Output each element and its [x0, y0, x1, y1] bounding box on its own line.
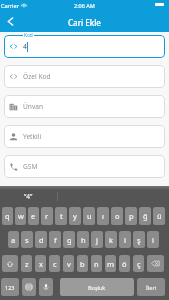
- staticText: l: [124, 235, 126, 245]
- staticText: p: [129, 211, 134, 221]
- button[interactable]: b: [77, 255, 88, 272]
- button[interactable]: j: [91, 231, 103, 248]
- staticText: Kod: [24, 32, 33, 39]
- staticText: u: [87, 211, 92, 221]
- button[interactable]: a: [8, 231, 19, 248]
- button[interactable]: o: [111, 207, 123, 225]
- button[interactable]: ç: [133, 255, 144, 272]
- button[interactable]: q: [2, 207, 13, 225]
- staticText: n: [94, 259, 99, 269]
- button[interactable]: v: [63, 255, 74, 272]
- staticText: GSM: [23, 162, 38, 171]
- staticText: 4: [23, 42, 27, 51]
- button[interactable]: İleri: [137, 278, 165, 296]
- staticText: h: [81, 235, 86, 245]
- staticText: s: [25, 235, 29, 245]
- button[interactable]: ü: [153, 207, 165, 225]
- button[interactable]: z: [21, 255, 32, 272]
- staticText: ü: [157, 211, 162, 221]
- staticText: ı: [102, 211, 104, 221]
- staticText: w: [18, 211, 24, 221]
- button[interactable]: e: [28, 207, 39, 225]
- staticText: Ünvan: [23, 102, 44, 111]
- button[interactable]: Ünvan: [4, 95, 165, 118]
- staticText: q: [5, 211, 10, 221]
- staticText: g: [67, 235, 72, 245]
- staticText: t: [60, 211, 63, 221]
- staticText: ö: [122, 259, 127, 269]
- button[interactable]: Shift: [2, 255, 18, 272]
- staticText: Carrier: [1, 2, 19, 9]
- button[interactable]: h: [77, 231, 89, 248]
- staticText: 2:06 AM: [74, 2, 95, 9]
- button[interactable]: Back: [0, 12, 20, 30]
- button[interactable]: Boşluk: [60, 278, 134, 296]
- button[interactable]: Change language: [22, 278, 36, 296]
- staticText: x: [39, 259, 43, 269]
- staticText: j: [96, 235, 98, 245]
- button[interactable]: c: [49, 255, 60, 272]
- staticText: “4”: [24, 192, 33, 201]
- button[interactable]: l: [119, 231, 131, 248]
- staticText: k: [109, 235, 114, 245]
- button[interactable]: t: [55, 207, 67, 225]
- button[interactable]: k: [105, 231, 117, 248]
- staticText: ç: [137, 259, 141, 269]
- staticText: d: [39, 235, 44, 245]
- button[interactable]: Özel Kod: [4, 65, 165, 88]
- staticText: o: [115, 211, 120, 221]
- staticText: ş: [137, 235, 141, 245]
- button[interactable]: i: [147, 231, 159, 248]
- staticText: z: [25, 259, 29, 269]
- staticText: v: [67, 259, 71, 269]
- button[interactable]: s: [21, 231, 33, 248]
- button[interactable]: y: [69, 207, 81, 225]
- staticText: 123: [5, 284, 15, 291]
- button[interactable]: m: [105, 255, 116, 272]
- staticText: b: [80, 259, 85, 269]
- button[interactable]: Backspace: [147, 255, 164, 272]
- button[interactable]: w: [15, 207, 26, 225]
- staticText: İleri: [146, 284, 157, 291]
- staticText: f: [54, 235, 57, 245]
- button[interactable]: ö: [119, 255, 130, 272]
- button[interactable]: n: [91, 255, 102, 272]
- button[interactable]: d: [35, 231, 47, 248]
- staticText: r: [45, 211, 49, 221]
- button[interactable]: ğ: [139, 207, 151, 225]
- staticText: a: [11, 235, 16, 245]
- staticText: Boşluk: [88, 284, 106, 291]
- button[interactable]: Voice input: [39, 278, 53, 296]
- button[interactable]: ı: [97, 207, 109, 225]
- button[interactable]: f: [49, 231, 61, 248]
- staticText: ğ: [143, 211, 148, 221]
- button[interactable]: x: [35, 255, 46, 272]
- button[interactable]: “4”: [24, 192, 33, 201]
- staticText: y: [73, 211, 77, 221]
- staticText: c: [53, 259, 57, 269]
- button[interactable]: 123: [1, 278, 19, 296]
- staticText: i: [152, 235, 154, 245]
- button[interactable]: Yetkili: [4, 125, 165, 148]
- staticText: Cari Ekle: [68, 17, 101, 28]
- button[interactable]: p: [125, 207, 137, 225]
- staticText: Yetkili: [23, 132, 42, 141]
- button[interactable]: r: [41, 207, 53, 225]
- staticText: m: [107, 259, 115, 269]
- button[interactable]: g: [63, 231, 75, 248]
- button[interactable]: 4: [4, 35, 165, 58]
- staticText: e: [31, 211, 36, 221]
- button[interactable]: GSM: [4, 155, 165, 178]
- staticText: Özel Kod: [23, 72, 51, 81]
- button[interactable]: ş: [133, 231, 145, 248]
- button[interactable]: u: [83, 207, 95, 225]
